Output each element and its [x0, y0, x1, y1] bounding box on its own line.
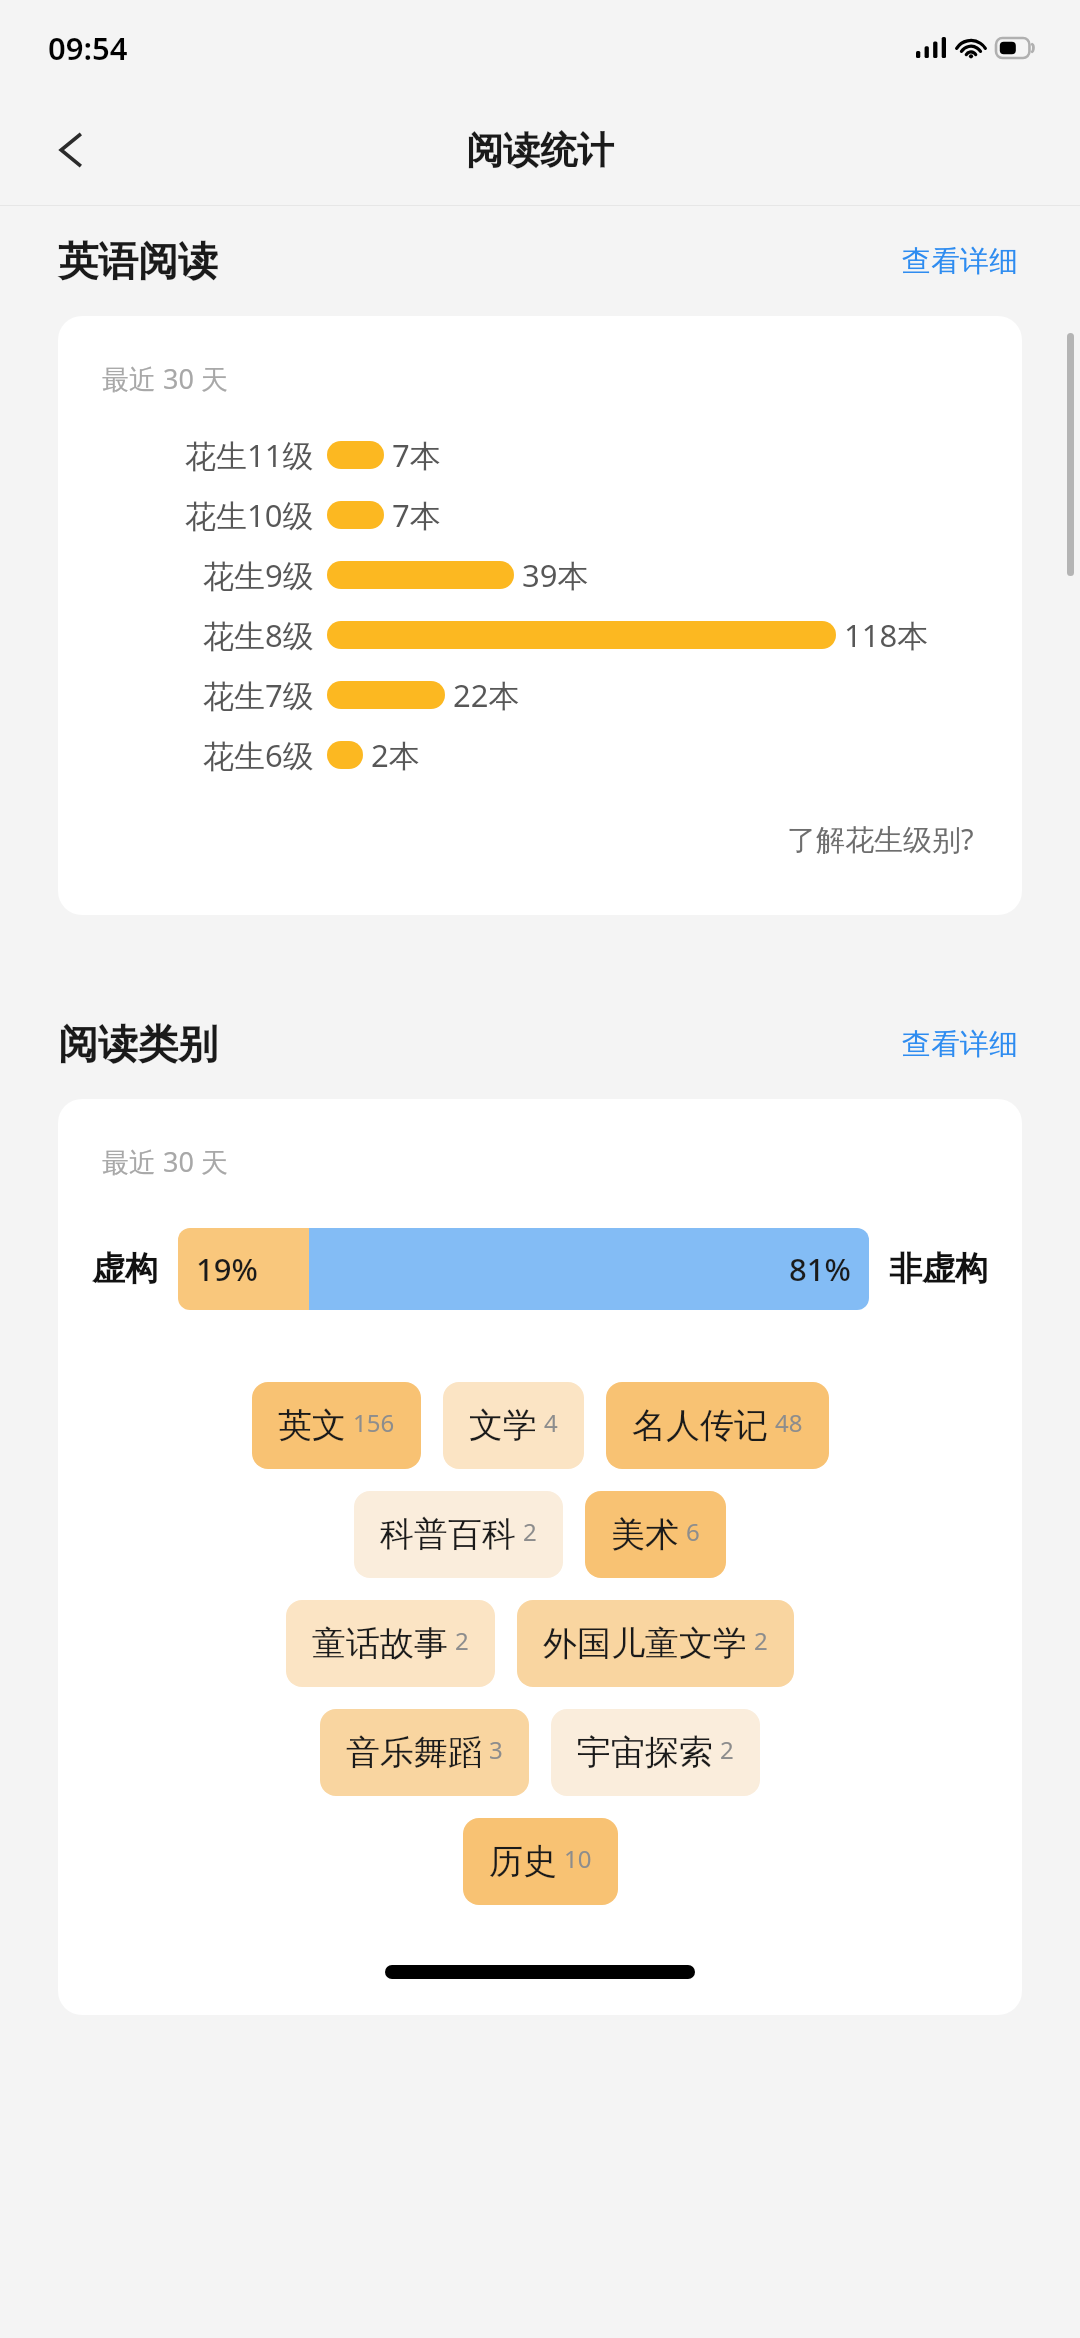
button[interactable]: 外国儿童文学: [517, 1600, 794, 1687]
staticText: 81%: [789, 1248, 851, 1290]
staticText: 7本: [392, 434, 441, 476]
staticText: 花生6级: [203, 734, 314, 776]
staticText: 7本: [392, 494, 441, 536]
staticText: 156: [353, 1406, 395, 1439]
staticText: 19%: [196, 1248, 258, 1290]
staticText: 22本: [453, 674, 520, 716]
button[interactable]: 历史: [463, 1818, 618, 1905]
button[interactable]: 查看详细: [898, 237, 1022, 286]
button[interactable]: 音乐舞蹈: [320, 1709, 529, 1796]
staticText: 48: [775, 1406, 803, 1439]
staticText: 科普百科: [380, 1513, 516, 1556]
button[interactable]: 宇宙探索: [551, 1709, 760, 1796]
staticText: 2: [455, 1624, 469, 1657]
staticText: 童话故事: [312, 1622, 448, 1665]
button[interactable]: 童话故事: [286, 1600, 495, 1687]
staticText: 英语阅读: [58, 236, 218, 286]
staticText: 6: [686, 1515, 700, 1548]
staticText: 花生9级: [203, 554, 314, 596]
staticText: 查看详细: [902, 243, 1018, 280]
staticText: 非虚构: [889, 1248, 988, 1290]
staticText: 2本: [371, 734, 420, 776]
staticText: 文学: [469, 1404, 537, 1447]
staticText: 2: [523, 1515, 537, 1548]
staticText: 最近 30 天: [102, 360, 228, 397]
staticText: 花生7级: [203, 674, 314, 716]
staticText: 了解花生级别?: [787, 819, 974, 859]
staticText: 09:54: [48, 27, 128, 69]
staticText: 39本: [522, 554, 589, 596]
staticText: 虚构: [92, 1248, 158, 1290]
staticText: 花生8级: [203, 614, 314, 656]
staticText: 2: [754, 1624, 768, 1657]
staticText: 118本: [844, 614, 929, 656]
staticText: 宇宙探索: [577, 1731, 713, 1774]
button[interactable]: 名人传记: [606, 1382, 829, 1469]
button[interactable]: 英文: [252, 1382, 421, 1469]
staticText: 4: [544, 1406, 558, 1439]
button[interactable]: 文学: [443, 1382, 584, 1469]
button[interactable]: 查看详细: [898, 1020, 1022, 1069]
staticText: 花生11级: [185, 434, 314, 476]
staticText: 10: [564, 1842, 592, 1875]
button[interactable]: 科普百科: [354, 1491, 563, 1578]
staticText: 3: [489, 1733, 503, 1766]
button[interactable]: 了解花生级别?: [783, 815, 978, 863]
button[interactable]: 美术: [585, 1491, 726, 1578]
staticText: 历史: [489, 1840, 557, 1883]
staticText: 美术: [611, 1513, 679, 1556]
staticText: 2: [720, 1733, 734, 1766]
staticText: 最近 30 天: [102, 1143, 228, 1180]
staticText: 音乐舞蹈: [346, 1731, 482, 1774]
staticText: 名人传记: [632, 1404, 768, 1447]
staticText: 英文: [278, 1404, 346, 1447]
button[interactable]: Back: [24, 102, 120, 198]
staticText: 花生10级: [185, 494, 314, 536]
staticText: 阅读类别: [58, 1019, 218, 1069]
staticText: 阅读统计: [466, 127, 614, 174]
staticText: 外国儿童文学: [543, 1622, 747, 1665]
staticText: 查看详细: [902, 1026, 1018, 1063]
